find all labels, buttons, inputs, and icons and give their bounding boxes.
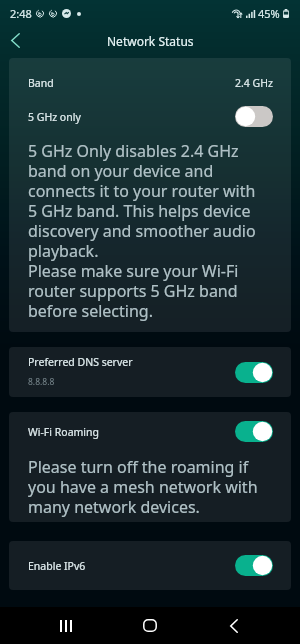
button[interactable]: Recent apps — [44, 607, 88, 644]
staticText: 45% — [258, 6, 280, 21]
button[interactable]: Enabled — [235, 555, 273, 576]
staticText: Wi-Fi Roaming — [28, 425, 99, 439]
button[interactable]: Back — [212, 607, 256, 644]
button[interactable]: Back — [1, 27, 29, 55]
button[interactable]: Home — [128, 607, 172, 644]
button[interactable]: Enabled — [235, 421, 273, 442]
button[interactable]: Enabled — [235, 362, 273, 383]
button[interactable]: Disabled — [235, 106, 273, 127]
staticText: Preferred DNS server — [28, 355, 133, 369]
button[interactable]: Enable IPv6 — [9, 541, 291, 590]
button[interactable]: Band — [9, 58, 291, 332]
staticText: 8.8.8.8 — [28, 376, 55, 388]
staticText: 5 GHz only — [28, 110, 81, 124]
staticText: Enable IPv6 — [28, 559, 86, 573]
staticText: Band — [28, 76, 54, 90]
staticText: Please turn off the roaming if you have … — [28, 456, 262, 517]
staticText: 2.4 GHz — [235, 76, 273, 90]
staticText: 2:48 — [10, 6, 32, 21]
button[interactable]: Wi-Fi Roaming — [9, 412, 291, 522]
staticText: 5 GHz Only disables 2.4 GHz band on your… — [28, 140, 262, 321]
button[interactable]: Preferred DNS server — [9, 347, 291, 397]
staticText: Network Status — [107, 33, 194, 49]
